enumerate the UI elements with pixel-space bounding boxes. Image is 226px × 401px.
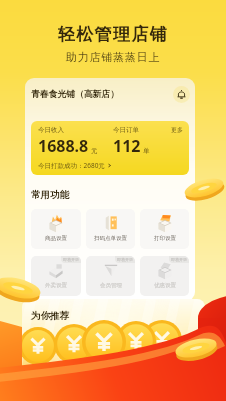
staticText: 外卖设置 xyxy=(45,282,67,289)
staticText: 青春食光铺（高新店） xyxy=(31,89,119,100)
staticText: 今日收入 xyxy=(38,126,64,134)
button[interactable]: 今日收入 xyxy=(31,121,189,175)
button[interactable]: 更多 xyxy=(171,126,183,134)
staticText: 1688.8 xyxy=(38,135,89,157)
staticText: 打印设置 xyxy=(154,235,176,242)
staticText: 更多 xyxy=(171,126,183,134)
button[interactable]: 外卖设置 xyxy=(31,256,81,296)
staticText: 即将开放 xyxy=(117,257,133,262)
staticText: 会员管理 xyxy=(100,282,122,289)
staticText: 扫码点单设置 xyxy=(94,235,127,242)
staticText: 单 xyxy=(143,147,150,155)
staticText: 今日打款成功：2680元 xyxy=(38,161,105,170)
staticText: 即将开放 xyxy=(171,257,187,262)
staticText: 轻松管理店铺 xyxy=(0,24,226,45)
button[interactable]: 优惠设置 xyxy=(140,256,189,296)
button[interactable]: 商品设置 xyxy=(31,209,81,249)
staticText: 即将开放 xyxy=(63,257,79,262)
staticText: 元 xyxy=(91,147,98,155)
staticText: 助力店铺蒸蒸日上 xyxy=(0,50,226,64)
staticText: 112 xyxy=(113,135,141,157)
button[interactable]: 扫码点单设置 xyxy=(86,209,135,249)
staticText: 商品设置 xyxy=(45,235,67,242)
button[interactable]: 会员管理 xyxy=(86,256,135,296)
button[interactable]: 为你推荐 xyxy=(31,310,69,322)
staticText: 优惠设置 xyxy=(154,282,176,289)
staticText: 今日订单 xyxy=(113,126,139,134)
button[interactable]: Notifications xyxy=(173,86,190,103)
staticText: 常用功能 xyxy=(31,189,69,201)
button[interactable]: 打印设置 xyxy=(140,209,189,249)
